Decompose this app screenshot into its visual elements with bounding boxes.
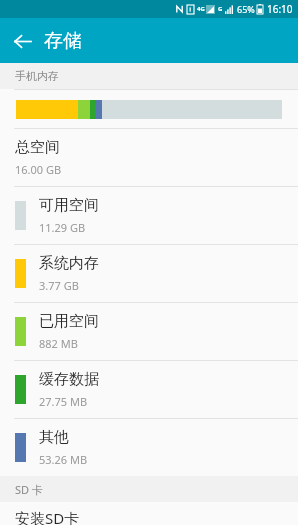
- staticText: 安装SD卡: [15, 508, 80, 525]
- button[interactable]: 可用空间: [0, 187, 298, 244]
- staticText: 65%: [237, 3, 255, 15]
- staticText: 可用空间: [39, 196, 99, 215]
- staticText: 手机内存: [15, 69, 59, 83]
- staticText: G: [218, 5, 223, 13]
- button[interactable]: 安装SD卡: [0, 502, 298, 525]
- button[interactable]: 总空间: [0, 129, 298, 186]
- staticText: 其他: [39, 428, 69, 447]
- staticText: 11.29 GB: [39, 220, 86, 235]
- staticText: 27.75 MB: [39, 394, 88, 409]
- staticText: 882 MB: [39, 336, 78, 351]
- staticText: 已用空间: [39, 312, 99, 331]
- staticText: 3.77 GB: [39, 278, 79, 293]
- staticText: 缓存数据: [39, 370, 99, 389]
- button[interactable]: Back: [0, 19, 44, 63]
- staticText: 4G: [197, 5, 205, 13]
- staticText: 16.00 GB: [15, 162, 62, 177]
- staticText: SD 卡: [15, 482, 43, 497]
- staticText: 系统内存: [39, 254, 99, 273]
- button[interactable]: 其他: [0, 419, 298, 476]
- button[interactable]: 已用空间: [0, 303, 298, 360]
- staticText: 53.26 MB: [39, 452, 88, 467]
- staticText: 16:10: [267, 2, 293, 16]
- staticText: 存储: [44, 29, 82, 53]
- button[interactable]: 系统内存: [0, 245, 298, 302]
- staticText: 总空间: [15, 138, 60, 157]
- button[interactable]: 缓存数据: [0, 361, 298, 418]
